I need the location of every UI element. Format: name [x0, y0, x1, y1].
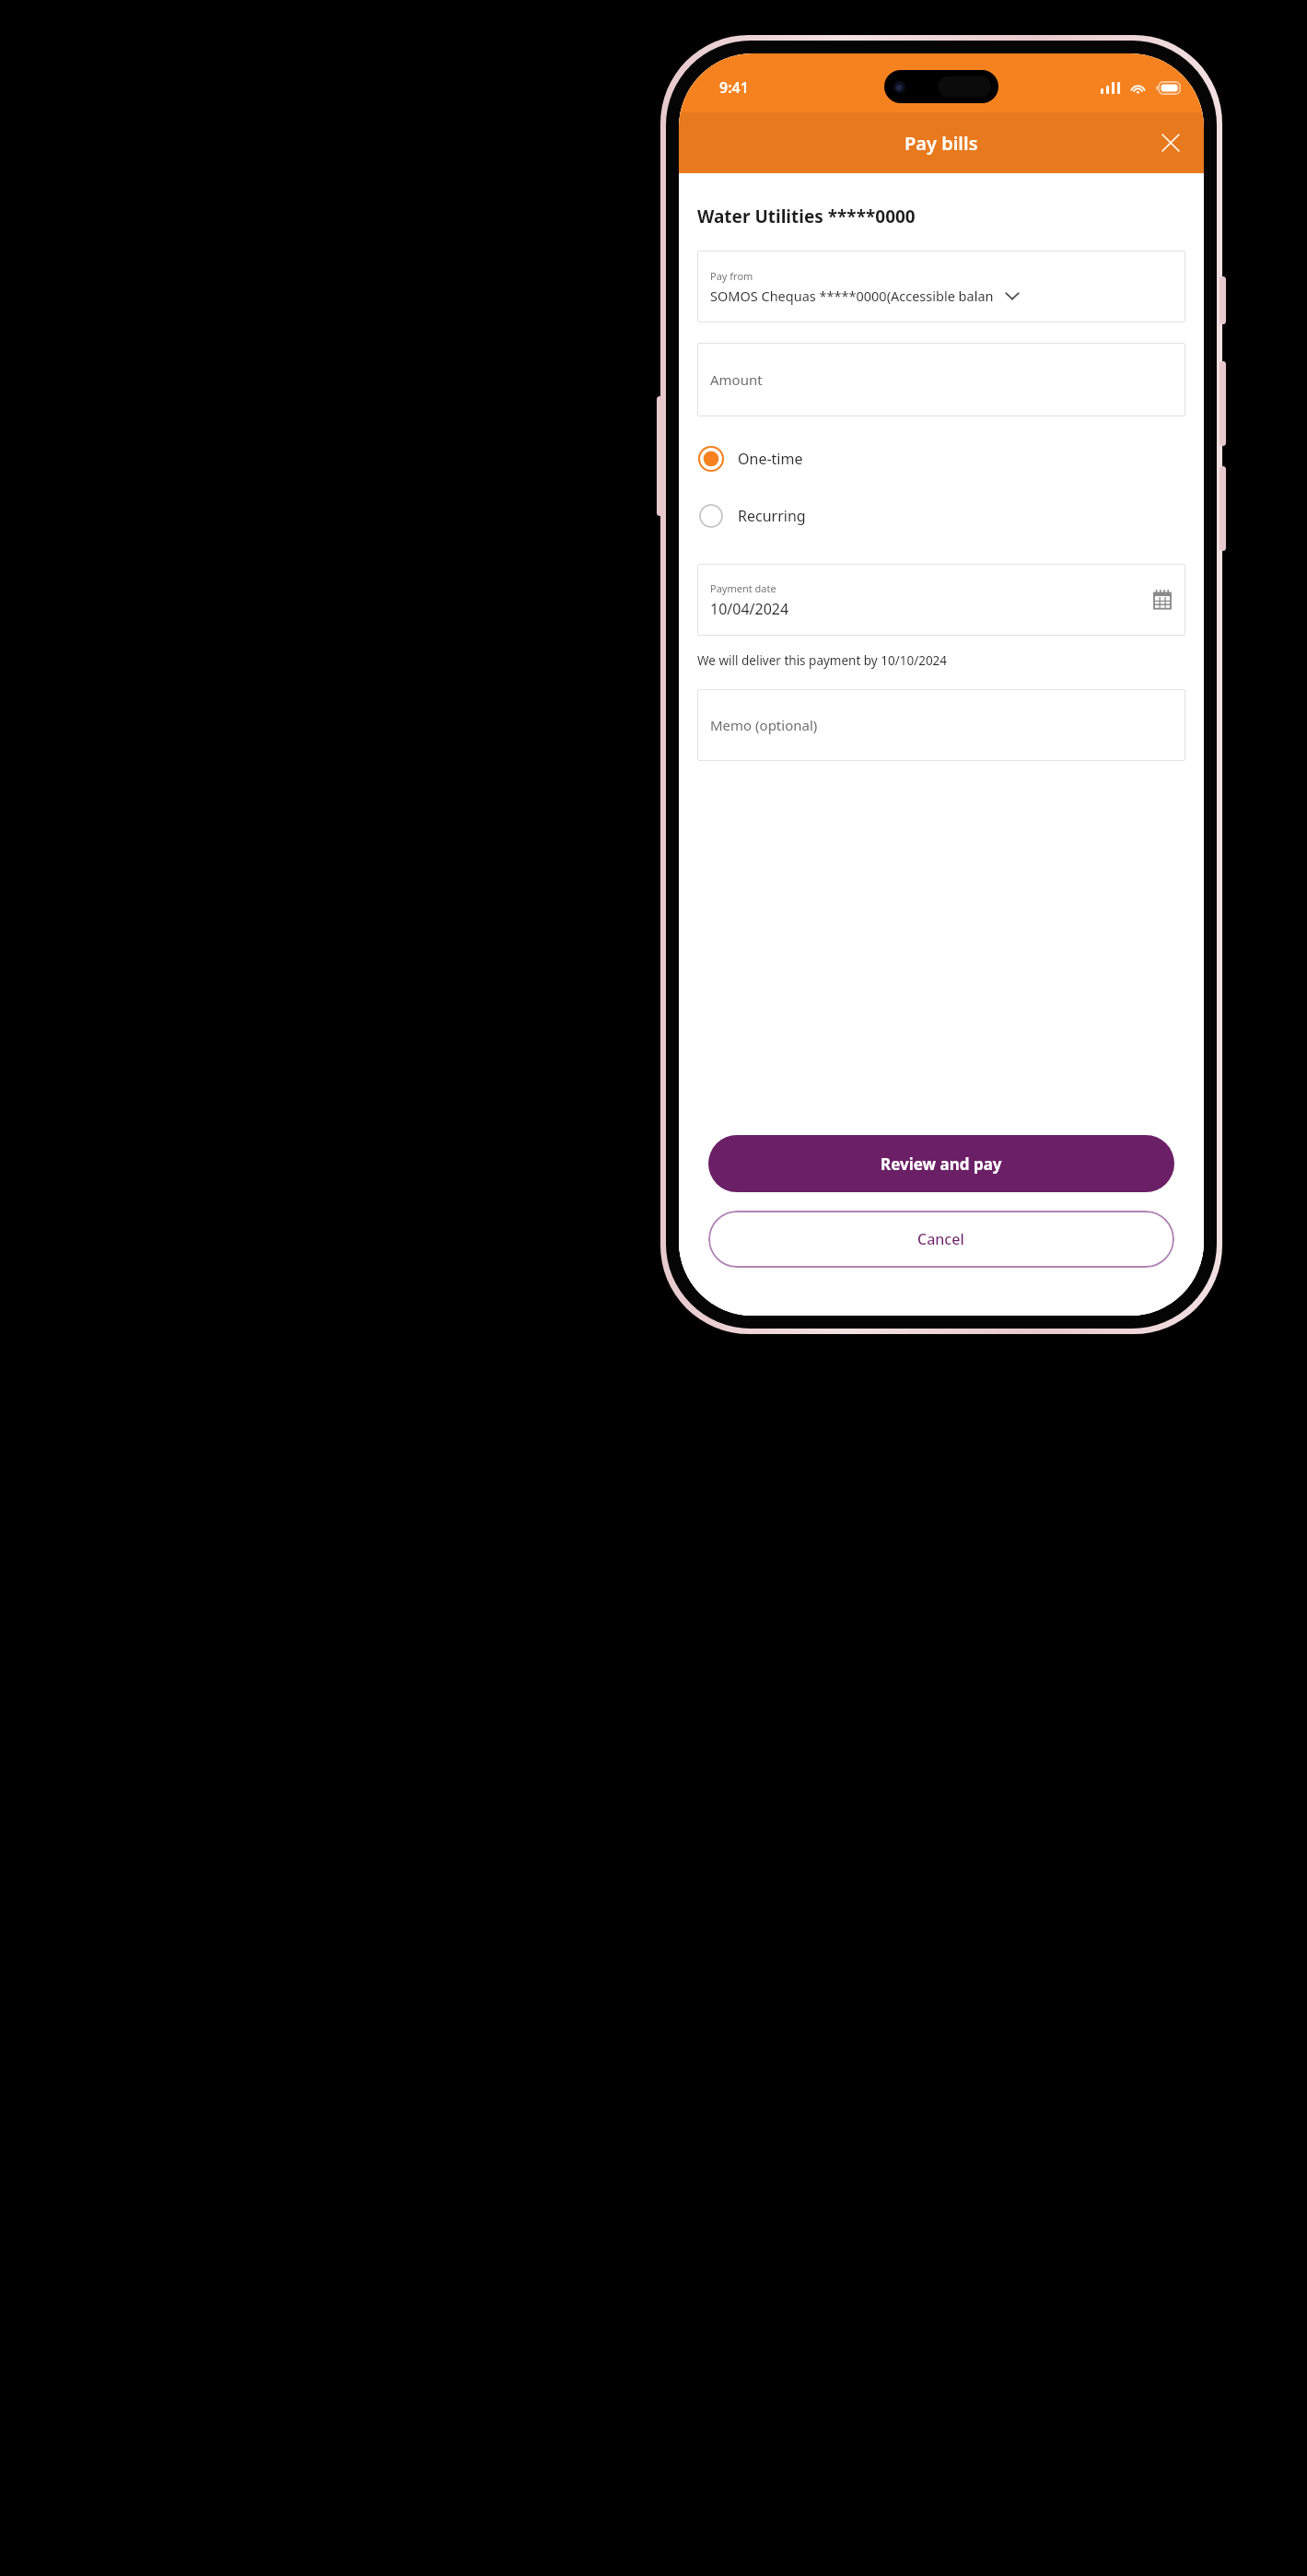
staticText: Amount	[710, 370, 763, 389]
staticText: Pay from	[710, 269, 753, 283]
button[interactable]: Cancel	[708, 1211, 1174, 1268]
staticText: Water Utilities *****0000	[697, 205, 916, 228]
button[interactable]: Amount	[697, 343, 1185, 416]
button[interactable]: Recurring	[697, 492, 1185, 540]
button[interactable]: Payment date	[697, 564, 1185, 636]
staticText: Cancel	[917, 1229, 964, 1249]
staticText: Pay bills	[904, 131, 978, 156]
staticText: 10/04/2024	[710, 599, 789, 619]
staticText: Memo (optional)	[710, 716, 818, 734]
staticText: One-time	[738, 449, 803, 469]
staticText: SOMOS Chequas *****0000(Accessible balan	[710, 287, 994, 305]
button[interactable]: One-time	[697, 435, 1185, 483]
staticText: Payment date	[710, 581, 776, 595]
button[interactable]: Pay from account	[697, 251, 1185, 322]
button[interactable]: Review and pay	[708, 1135, 1174, 1192]
staticText: 9:41	[719, 77, 749, 98]
staticText: Recurring	[738, 506, 806, 526]
staticText: Review and pay	[881, 1153, 1002, 1175]
staticText: We will deliver this payment by 10/10/20…	[697, 652, 948, 669]
button[interactable]: Close	[1149, 121, 1193, 165]
button[interactable]: Memo	[697, 689, 1185, 761]
